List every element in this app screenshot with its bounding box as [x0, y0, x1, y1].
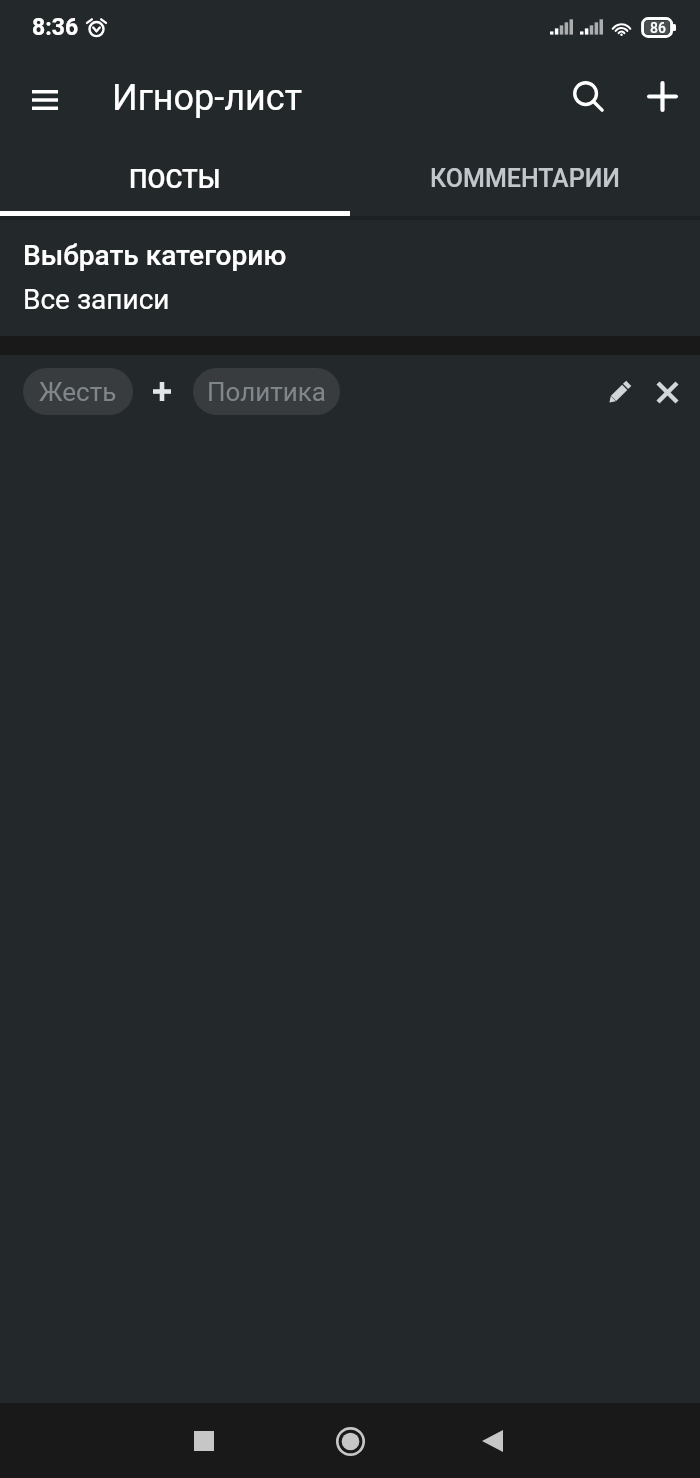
button[interactable]: ПОСТЫ — [0, 143, 350, 216]
staticText: Все записи — [23, 283, 170, 316]
button[interactable]: Back — [462, 1411, 522, 1471]
staticText: КОММЕНТАРИИ — [430, 164, 621, 193]
button[interactable]: Жесть — [23, 368, 133, 415]
staticText: 86 — [650, 20, 666, 36]
staticText: Игнор-лист — [112, 77, 303, 119]
button[interactable]: Add — [633, 67, 691, 125]
staticText: Жесть — [39, 377, 117, 407]
staticText: 8:36 — [32, 14, 79, 41]
button[interactable]: Edit categories — [595, 368, 643, 416]
button[interactable]: КОММЕНТАРИИ — [350, 143, 700, 216]
button[interactable]: Recent apps — [174, 1411, 234, 1471]
button[interactable]: Open navigation menu — [16, 71, 73, 128]
button[interactable]: Clear selection — [643, 368, 691, 416]
button[interactable]: Выбрать категорию — [0, 220, 700, 336]
staticText: Выбрать категорию — [23, 239, 287, 272]
button[interactable]: Политика — [193, 368, 340, 415]
button[interactable]: Home — [320, 1411, 380, 1471]
staticText: ПОСТЫ — [129, 164, 221, 194]
staticText: Политика — [207, 377, 326, 407]
button[interactable]: Search — [559, 67, 617, 125]
